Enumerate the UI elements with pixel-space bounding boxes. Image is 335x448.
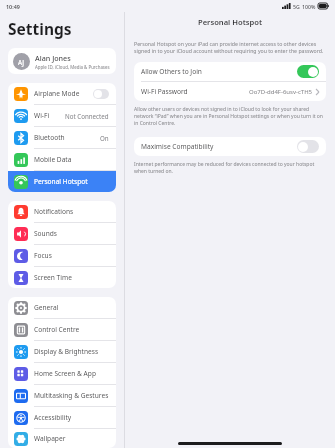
staticText: Display & Brightness — [34, 347, 109, 356]
staticText: Personal Hotspot — [34, 177, 109, 186]
staticText: Allow other users or devices not signed … — [134, 106, 326, 127]
staticText: 100% — [302, 3, 316, 10]
staticText: Mobile Data — [34, 155, 109, 164]
staticText: Airplane Mode — [34, 89, 93, 98]
button[interactable]: Allow Others to Join — [134, 62, 326, 81]
button[interactable]: Control Centre — [8, 319, 116, 340]
button[interactable]: Wi-Fi Password — [134, 82, 326, 101]
button[interactable]: Bluetooth — [8, 127, 116, 148]
staticText: Not Connected — [65, 112, 109, 120]
button[interactable]: Sounds — [8, 223, 116, 244]
button[interactable]: Home Screen & App Library — [8, 363, 116, 384]
button[interactable]: Wi-Fi — [8, 105, 116, 126]
staticText: Internet performance may be reduced for … — [134, 161, 326, 175]
button[interactable]: Wallpaper — [8, 429, 116, 448]
button[interactable]: Toggle on — [297, 65, 319, 78]
staticText: Wi-Fi — [34, 111, 65, 120]
staticText: 10:49 — [6, 3, 20, 10]
staticText: 5G — [293, 3, 300, 10]
staticText: General — [34, 303, 109, 312]
staticText: Personal Hotspot on your iPad can provid… — [134, 40, 326, 54]
staticText: Screen Time — [34, 273, 109, 282]
staticText: Home Screen & App Library — [34, 369, 109, 378]
button[interactable]: Focus — [8, 245, 116, 266]
button[interactable]: General — [8, 297, 116, 318]
button[interactable]: Maximise Compatibility — [134, 137, 326, 156]
button[interactable]: Toggle off — [297, 140, 319, 153]
staticText: Wallpaper — [34, 434, 109, 443]
staticText: Alan Jones — [35, 53, 71, 63]
staticText: Multitasking & Gestures — [34, 391, 109, 400]
staticText: Accessibility — [34, 413, 109, 422]
staticText: Sounds — [34, 229, 109, 238]
staticText: Wi-Fi Password — [141, 87, 249, 96]
staticText: Allow Others to Join — [141, 67, 297, 76]
button[interactable]: Notifications — [8, 201, 116, 222]
staticText: Oo7D-dd4F-6usv-cTH5 — [249, 88, 313, 96]
staticText: Apple ID, iCloud, Media & Purchases — [35, 64, 110, 70]
button[interactable]: AJ — [8, 48, 116, 74]
staticText: AJ — [18, 58, 25, 66]
button[interactable]: Screen Time — [8, 267, 116, 288]
staticText: Control Centre — [34, 325, 109, 334]
staticText: Maximise Compatibility — [141, 142, 297, 151]
button[interactable] — [93, 89, 109, 99]
button[interactable]: Mobile Data — [8, 149, 116, 170]
staticText: Bluetooth — [34, 133, 100, 142]
button[interactable]: Multitasking & Gestures — [8, 385, 116, 406]
staticText: On — [100, 134, 109, 142]
staticText: Focus — [34, 251, 109, 260]
staticText: Notifications — [34, 207, 109, 216]
staticText: Settings — [8, 18, 72, 39]
button[interactable]: Personal Hotspot — [8, 171, 116, 192]
button[interactable]: Display & Brightness — [8, 341, 116, 362]
button[interactable]: Airplane Mode — [8, 83, 116, 104]
staticText: Personal Hotspot — [134, 17, 326, 27]
button[interactable]: Accessibility — [8, 407, 116, 428]
